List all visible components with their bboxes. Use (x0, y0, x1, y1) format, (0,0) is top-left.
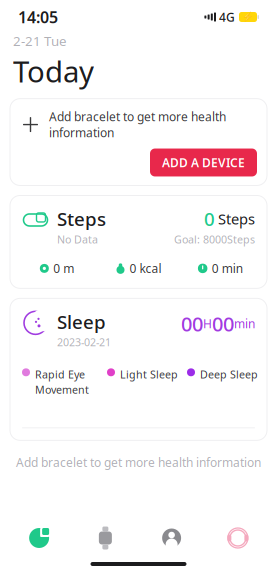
staticText: Goal: 8000Steps (174, 232, 255, 246)
staticText: ADD A DEVICE (162, 154, 245, 170)
staticText: Rapid Eye (35, 367, 85, 381)
staticText: No Data (57, 232, 98, 246)
button[interactable]: Sleep (10, 298, 267, 440)
staticText: 14:05 (18, 6, 58, 28)
staticText: 0 min (212, 260, 243, 276)
staticText: Steps (57, 206, 106, 231)
staticText: 2-21 Tue (13, 32, 67, 50)
staticText: Movement (35, 382, 89, 397)
staticText: Add bracelet to get more health informat… (49, 109, 226, 141)
staticText: 0 kcal (129, 260, 161, 276)
staticText: ⚡ (242, 12, 254, 22)
button[interactable]: Support (205, 526, 271, 550)
staticText: 0 m (53, 260, 74, 276)
staticText: Light Sleep (120, 367, 178, 381)
button[interactable]: Steps (10, 195, 267, 288)
staticText: Add bracelet to get more health informat… (16, 454, 261, 470)
staticText: min (234, 316, 255, 332)
staticText: H (203, 316, 212, 332)
button[interactable]: Profile (138, 526, 205, 550)
button[interactable]: Device (72, 526, 138, 550)
staticText: Deep Sleep (200, 367, 258, 381)
staticText: Today (13, 52, 94, 91)
staticText: Steps (218, 209, 255, 229)
staticText: 00 (212, 310, 234, 337)
staticText: 2023-02-21 (57, 335, 111, 349)
button[interactable]: Health (6, 526, 72, 550)
button[interactable]: ADD A DEVICE (150, 148, 257, 176)
staticText: 00 (181, 310, 203, 337)
staticText: 4G (219, 9, 235, 25)
staticText: 0 (204, 206, 215, 231)
staticText: Sleep (57, 309, 106, 334)
